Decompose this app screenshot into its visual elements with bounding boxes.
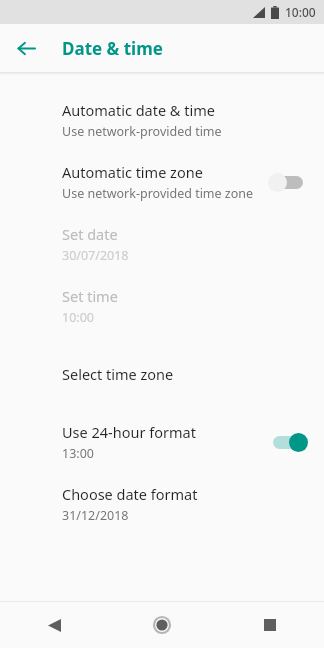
button[interactable]: Set time [0, 275, 324, 337]
staticText: Automatic time zone [62, 162, 203, 182]
button[interactable]: Home [108, 602, 216, 648]
button[interactable]: Set date [0, 213, 324, 275]
staticText: Use network-provided time zone [62, 185, 254, 202]
button[interactable]: Select time zone [0, 337, 324, 411]
button[interactable]: Toggle on [268, 429, 308, 455]
staticText: Use 24-hour format [62, 422, 196, 442]
staticText: Select time zone [62, 364, 174, 384]
staticText: 13:00 [62, 445, 94, 462]
staticText: 10:00 [62, 309, 94, 326]
staticText: Choose date format [62, 484, 198, 504]
staticText: 30/07/2018 [62, 247, 129, 264]
button[interactable]: Choose date format [0, 473, 324, 535]
button[interactable]: Automatic date & time [0, 89, 324, 151]
staticText: 31/12/2018 [62, 507, 129, 524]
button[interactable]: Recent apps [216, 602, 324, 648]
button[interactable]: Back [8, 30, 44, 66]
button[interactable]: Toggle off [268, 169, 308, 195]
staticText: 10:00 [285, 4, 316, 20]
staticText: Use network-provided time [62, 123, 222, 140]
button[interactable]: Automatic time zone [0, 151, 324, 213]
button[interactable]: Back [0, 602, 108, 648]
staticText: Set date [62, 224, 118, 244]
staticText: Date & time [62, 37, 163, 60]
staticText: Automatic date & time [62, 100, 215, 120]
button[interactable]: Use 24-hour format [0, 411, 324, 473]
staticText: Set time [62, 286, 118, 306]
